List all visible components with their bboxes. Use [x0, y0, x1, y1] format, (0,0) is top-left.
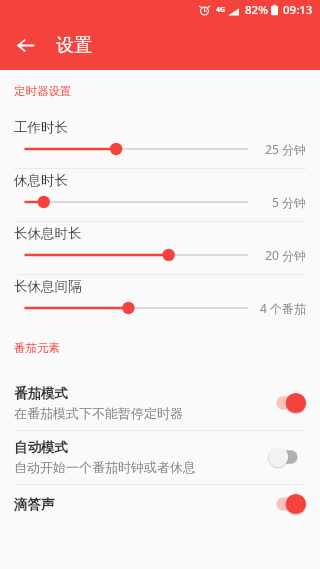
button[interactable]: 番茄模式 — [0, 377, 320, 430]
staticText: 番茄元素 — [14, 341, 60, 355]
button[interactable]: 自动模式 — [0, 431, 320, 484]
staticText: 在番茄模式下不能暂停定时器 — [14, 405, 183, 421]
staticText: 定时器设置 — [14, 84, 72, 98]
button[interactable]: Back — [8, 28, 42, 62]
button[interactable]: 滴答声 — [0, 485, 320, 524]
staticText: 休息时长 — [14, 172, 68, 189]
staticText: 4 个番茄 — [260, 300, 306, 316]
staticText: 长休息间隔 — [14, 278, 82, 295]
staticText: 工作时长 — [14, 119, 68, 136]
staticText: 番茄模式 — [14, 385, 68, 402]
staticText: 滴答声 — [14, 496, 55, 513]
staticText: 设置 — [56, 34, 92, 57]
staticText: 25 分钟 — [265, 141, 306, 157]
button[interactable]: On — [268, 493, 306, 515]
button[interactable]: On — [268, 392, 306, 414]
staticText: 09:13 — [283, 2, 313, 18]
staticText: 82% — [245, 2, 268, 18]
staticText: 长休息时长 — [14, 225, 82, 242]
button[interactable]: 长休息时长 — [0, 222, 320, 274]
staticText: 4G — [216, 5, 226, 15]
button[interactable]: 休息时长 — [0, 169, 320, 221]
staticText: 自动模式 — [14, 439, 68, 456]
staticText: 5 分钟 — [272, 194, 306, 210]
button[interactable]: Off — [268, 446, 306, 468]
staticText: 自动开始一个番茄时钟或者休息 — [14, 459, 196, 475]
button[interactable]: 长休息间隔 — [0, 275, 320, 327]
button[interactable]: 工作时长 — [0, 116, 320, 168]
staticText: 20 分钟 — [265, 247, 306, 263]
